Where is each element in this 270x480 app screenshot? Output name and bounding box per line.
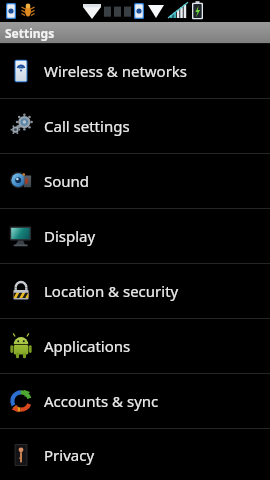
staticText: Accounts & sync	[44, 391, 159, 411]
button[interactable]: Sound	[0, 154, 270, 208]
button[interactable]: Applications	[0, 319, 270, 373]
staticText: Call settings	[44, 116, 130, 136]
button[interactable]: Wireless & networks	[0, 44, 270, 98]
button[interactable]: Privacy	[0, 429, 270, 480]
button[interactable]: Call settings	[0, 99, 270, 153]
staticText: Applications	[44, 336, 131, 356]
staticText: Privacy	[44, 445, 95, 465]
button[interactable]: Display	[0, 209, 270, 263]
staticText: Wireless & networks	[44, 61, 188, 81]
staticText: Settings	[5, 25, 55, 41]
staticText: Display	[44, 226, 96, 246]
button[interactable]: Accounts & sync	[0, 374, 270, 428]
button[interactable]: Location & security	[0, 264, 270, 318]
staticText: Sound	[44, 171, 90, 191]
staticText: Location & security	[44, 281, 179, 301]
